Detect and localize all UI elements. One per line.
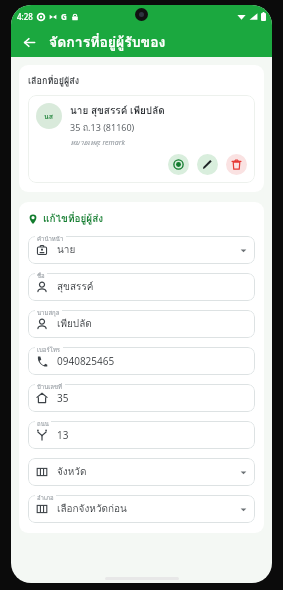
staticText: ถนน xyxy=(37,419,49,429)
button[interactable]: เพียปลัด xyxy=(28,310,255,338)
staticText: G xyxy=(61,11,67,22)
staticText: นามสกุล xyxy=(37,308,60,318)
staticText: แก้ไขที่อยู่ผู้ส่ง xyxy=(43,211,104,227)
staticText: นาย xyxy=(57,242,240,258)
staticText: เบอร์โทร xyxy=(37,345,61,355)
button[interactable]: Select xyxy=(168,154,189,175)
button[interactable]: จังหวัด xyxy=(28,458,255,486)
staticText: 4:28 xyxy=(17,11,33,22)
button[interactable]: Edit xyxy=(197,154,218,175)
staticText: สุขสรรค์ xyxy=(57,279,247,295)
button[interactable]: สุขสรรค์ xyxy=(28,273,255,301)
button[interactable]: Back xyxy=(17,30,41,54)
staticText: 0940825465 xyxy=(57,354,247,368)
staticText: เลือกจังหวัดก่อน xyxy=(57,501,240,517)
button[interactable]: นาย xyxy=(28,236,255,264)
button[interactable]: เลือกจังหวัดก่อน xyxy=(28,495,255,523)
staticText: บ้านเลขที่ xyxy=(37,382,63,392)
staticText: คำนำหน้า xyxy=(37,234,64,244)
staticText: เลือกที่อยู่ผู้ส่ง xyxy=(28,74,80,88)
button[interactable]: 35 xyxy=(28,384,255,412)
staticText: นาย สุขสรรค์ เพียปลัด xyxy=(70,103,165,119)
staticText: จังหวัด xyxy=(57,464,240,480)
staticText: นส xyxy=(44,111,54,122)
staticText: อำเภอ xyxy=(37,493,54,503)
staticText: เพียปลัด xyxy=(57,316,247,332)
staticText: หมายเหตุ: remark xyxy=(70,137,125,148)
staticText: 13 xyxy=(57,428,247,442)
button[interactable]: 13 xyxy=(28,421,255,449)
button[interactable]: 0940825465 xyxy=(28,347,255,375)
staticText: ชื่อ xyxy=(37,271,45,281)
button[interactable]: นส xyxy=(28,95,255,183)
staticText: 35 xyxy=(57,391,247,405)
staticText: 35 ถ.13 (81160) xyxy=(70,121,135,135)
staticText: จัดการที่อยู่ผู้รับของ xyxy=(49,31,166,53)
button[interactable]: Delete xyxy=(226,154,247,175)
